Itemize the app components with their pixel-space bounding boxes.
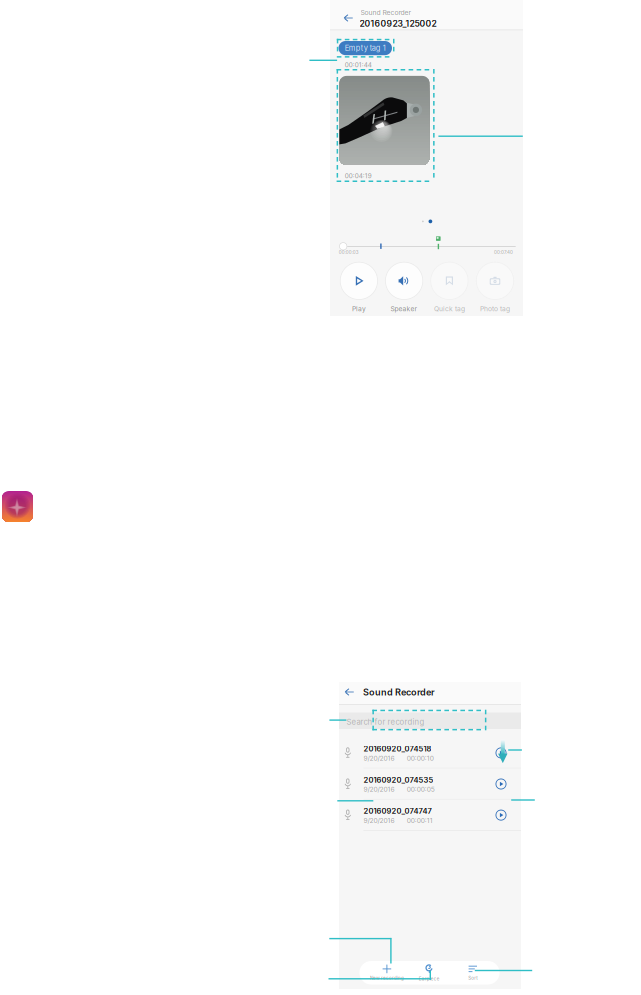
staticText: 00:00:10 <box>407 754 434 762</box>
staticText: Speaker <box>391 305 418 313</box>
staticText: Photo tag <box>480 305 510 313</box>
staticText: New recording <box>370 975 404 981</box>
staticText: 20160923_125002 <box>360 18 437 29</box>
button[interactable]: New recording <box>365 961 409 984</box>
button[interactable]: 20160920_074518 <box>339 737 521 768</box>
staticText: 20160920_074747 <box>363 806 431 816</box>
staticText: Sound Recorder <box>361 8 412 16</box>
staticText: 00:07:40 <box>494 249 513 255</box>
button[interactable]: Empty tag 1 <box>338 41 392 55</box>
staticText: Play <box>352 305 366 313</box>
staticText: 9/20/2016 <box>364 754 395 762</box>
staticText: 00:01:44 <box>345 61 372 69</box>
button[interactable]: 20160920_074535 <box>339 768 521 800</box>
staticText: Search for recording <box>346 717 424 727</box>
staticText: Sort <box>468 975 477 981</box>
button[interactable]: Photo tag <box>472 262 518 313</box>
staticText: Sound Recorder <box>363 687 435 698</box>
button[interactable]: Speaker <box>381 262 427 313</box>
staticText: 9/20/2016 <box>364 785 395 793</box>
staticText: Earpiece <box>419 976 440 982</box>
button[interactable]: Sort <box>451 961 495 984</box>
staticText: 00:04:19 <box>345 172 372 180</box>
staticText: 20160920_074535 <box>363 775 433 784</box>
button[interactable]: Play <box>336 262 382 313</box>
staticText: 00:00:03 <box>339 249 359 255</box>
staticText: 9/20/2016 <box>364 816 395 825</box>
button[interactable]: Quick tag <box>426 262 472 313</box>
button[interactable]: Earpiece <box>407 961 451 984</box>
button[interactable]: 20160920_074747 <box>339 800 521 831</box>
button[interactable]: Back <box>337 7 359 29</box>
staticText: 20160920_074518 <box>363 744 431 753</box>
staticText: Empty tag 1 <box>345 44 386 53</box>
staticText: 00:00:05 <box>407 785 435 793</box>
staticText: Quick tag <box>434 305 465 313</box>
staticText: 00:00:11 <box>407 816 433 825</box>
button[interactable]: Back <box>339 682 359 702</box>
